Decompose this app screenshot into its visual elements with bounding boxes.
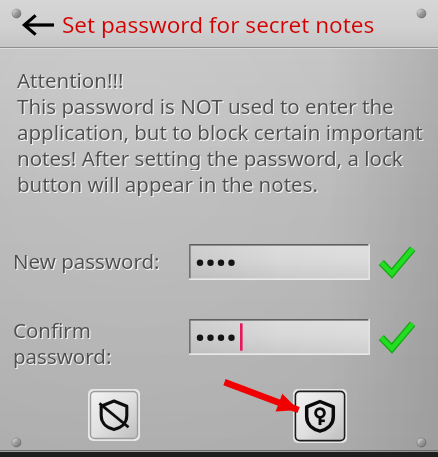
staticText: notes! After setting the password, a loc… bbox=[18, 145, 404, 171]
staticText: New password: bbox=[13, 247, 160, 273]
button[interactable] bbox=[189, 244, 370, 280]
staticText: New password: bbox=[14, 248, 161, 274]
staticText: application, but to block certain import… bbox=[17, 118, 423, 144]
staticText: Set password for secret notes bbox=[62, 9, 375, 40]
other: Valid bbox=[380, 247, 413, 277]
staticText: password: bbox=[13, 342, 112, 368]
button[interactable]: Set password bbox=[293, 389, 347, 443]
other: Valid bbox=[380, 322, 413, 352]
staticText: Confirm bbox=[13, 316, 92, 342]
button[interactable] bbox=[189, 319, 370, 355]
staticText: password: bbox=[14, 343, 113, 369]
button[interactable]: Back bbox=[14, 6, 62, 44]
staticText: Attention!!! bbox=[18, 67, 125, 93]
staticText: notes! After setting the password, a loc… bbox=[17, 144, 403, 170]
staticText: application, but to block certain import… bbox=[18, 119, 424, 145]
staticText: Confirm bbox=[14, 317, 93, 343]
staticText: This password is NOT used to enter the bbox=[17, 92, 394, 118]
staticText: button will appear in the notes. bbox=[18, 171, 319, 197]
staticText: button will appear in the notes. bbox=[17, 170, 318, 196]
button[interactable]: Disable password protection bbox=[88, 389, 140, 441]
staticText: Attention!!! bbox=[17, 66, 124, 92]
staticText: This password is NOT used to enter the bbox=[18, 93, 395, 119]
